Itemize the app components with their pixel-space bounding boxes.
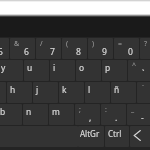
staticText: n (26, 106, 32, 117)
staticText: . (115, 112, 118, 124)
button[interactable]: . (101, 104, 126, 125)
button[interactable]: - (127, 104, 150, 125)
staticText: = (118, 39, 123, 49)
button[interactable]: n (23, 104, 48, 125)
staticText: j (36, 84, 39, 95)
staticText: AltGr (80, 128, 100, 139)
staticText: l (88, 84, 91, 95)
staticText: 0 (128, 46, 133, 58)
staticText: o (79, 62, 85, 73)
staticText: ñ (114, 84, 120, 95)
staticText: ( (66, 39, 69, 49)
button[interactable]: AltGr (78, 126, 104, 147)
staticText: k (62, 84, 67, 95)
staticText: ^ (132, 61, 137, 71)
button[interactable]: b (0, 104, 22, 125)
button[interactable]: ' (140, 38, 150, 59)
button[interactable]: , (75, 104, 100, 125)
staticText: ¨ (141, 83, 146, 93)
button[interactable]: m (49, 104, 74, 125)
staticText: 5 (0, 46, 3, 58)
button[interactable]: h (7, 82, 32, 103)
staticText: - (141, 112, 144, 124)
button[interactable]: ñ (111, 82, 136, 103)
staticText: 8 (76, 46, 81, 58)
button[interactable]: Ctrl (105, 126, 129, 147)
staticText: : (105, 105, 107, 115)
staticText: _ (131, 105, 135, 115)
staticText: 9 (102, 46, 107, 58)
button[interactable]: ^ (128, 60, 150, 81)
button[interactable]: j (33, 82, 58, 103)
button[interactable]: ´ (137, 82, 150, 103)
staticText: ? (144, 39, 148, 49)
staticText: i (53, 62, 56, 73)
staticText: & (14, 39, 20, 49)
staticText: m (52, 106, 60, 117)
button[interactable]: 6 (10, 38, 35, 59)
button[interactable]: 8 (62, 38, 87, 59)
staticText: / (40, 39, 43, 49)
button[interactable]: 9 (88, 38, 113, 59)
staticText: b (0, 106, 6, 117)
staticText: ` (142, 68, 145, 80)
staticText: ; (79, 105, 81, 115)
staticText: u (27, 62, 33, 73)
button[interactable]: k (59, 82, 84, 103)
staticText: p (105, 62, 111, 73)
staticText: , (89, 112, 92, 124)
staticText: 6 (24, 46, 29, 58)
staticText: ) (92, 39, 95, 49)
button[interactable]: 0 (114, 38, 139, 59)
button[interactable]: 5 (0, 38, 9, 59)
button[interactable]: o (76, 60, 101, 81)
button[interactable]: u (24, 60, 49, 81)
staticText: h (10, 84, 16, 95)
staticText: y (1, 62, 6, 73)
button[interactable]: p (102, 60, 127, 81)
staticText: 7 (50, 46, 55, 58)
button[interactable]: y (0, 60, 23, 81)
button[interactable]: Left arrow (130, 126, 150, 147)
button[interactable]: i (50, 60, 75, 81)
staticText: Ctrl (108, 128, 122, 139)
button[interactable]: l (85, 82, 110, 103)
button[interactable]: 7 (36, 38, 61, 59)
